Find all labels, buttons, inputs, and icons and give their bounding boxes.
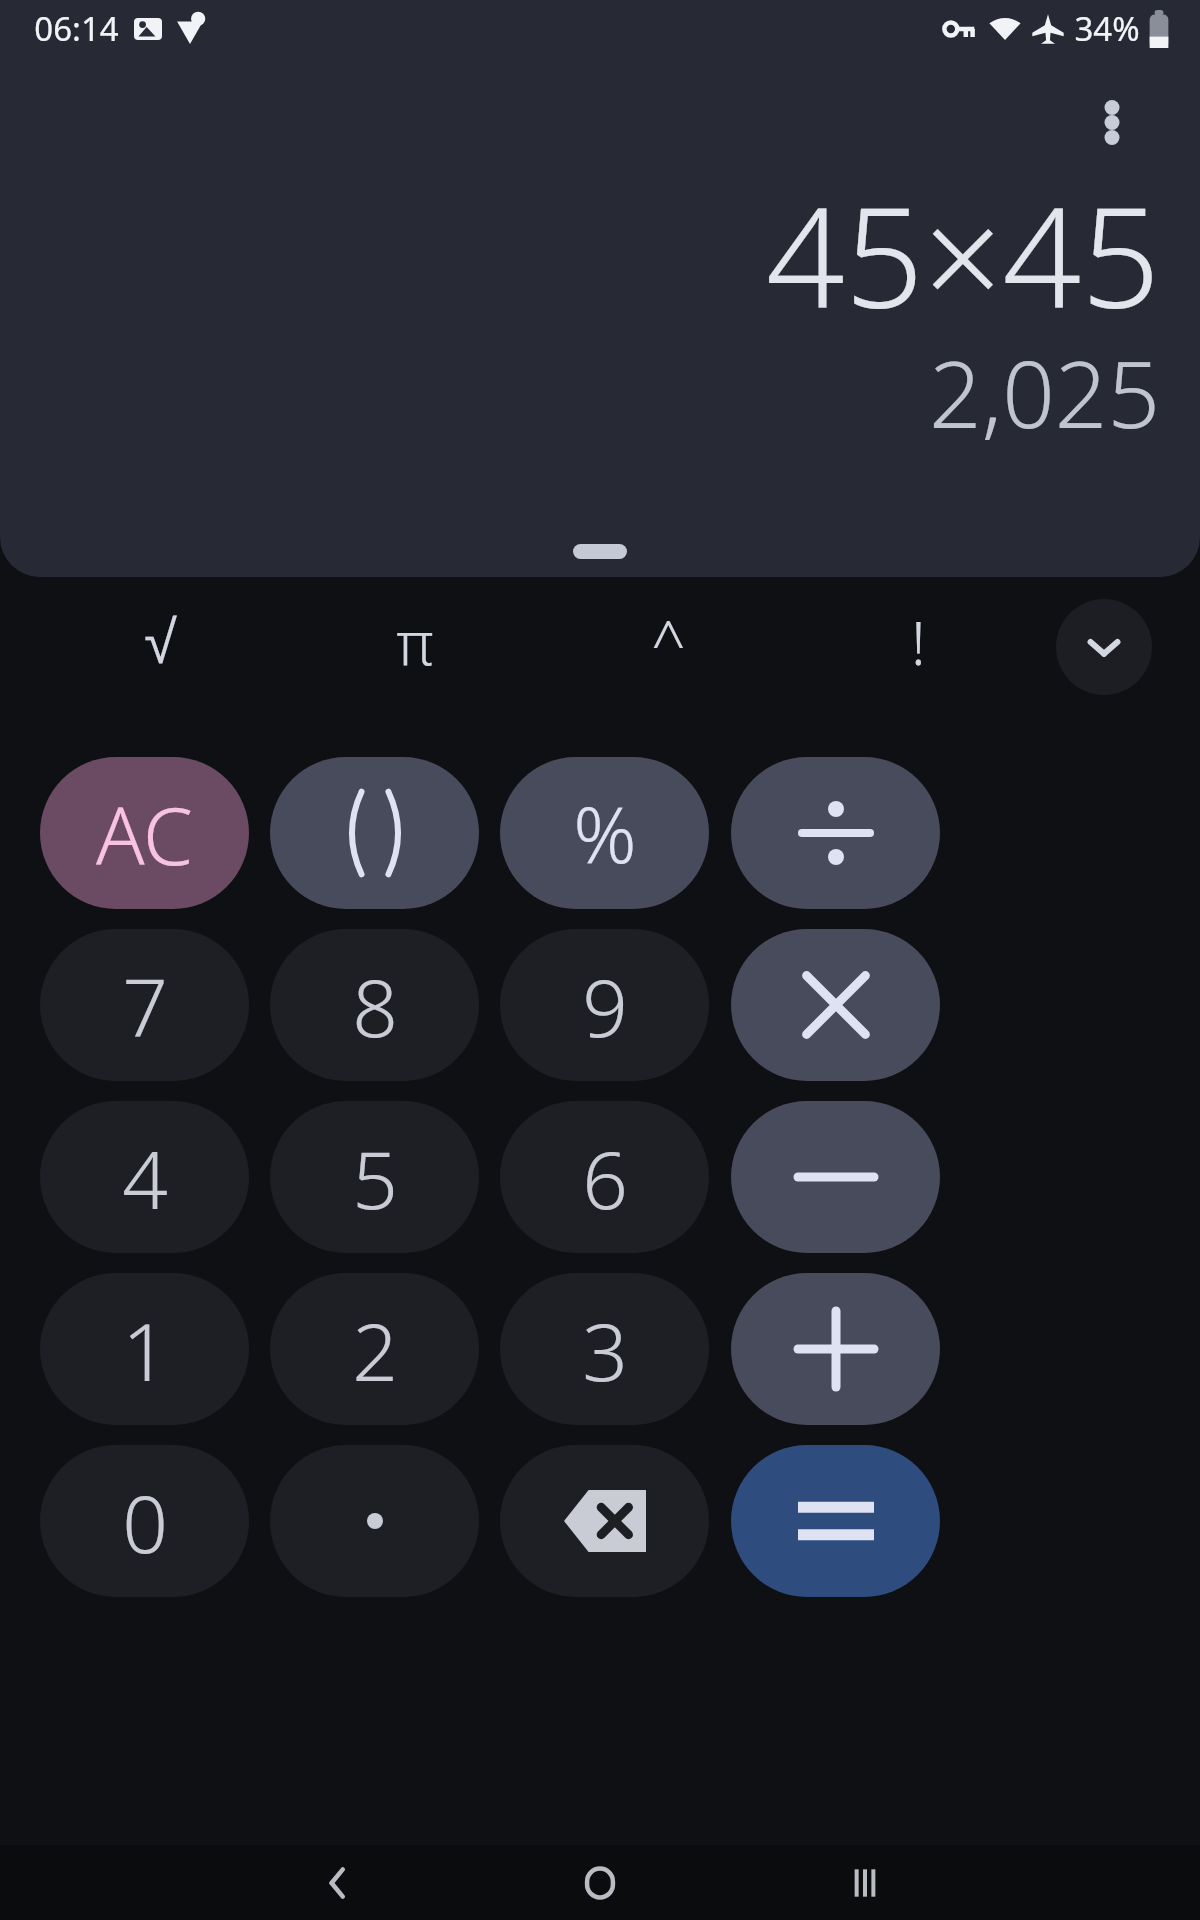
staticText: AC [96, 779, 193, 888]
staticText: √ [144, 609, 177, 676]
staticText: 3 [582, 1295, 628, 1404]
button[interactable]: ! [828, 577, 1008, 707]
staticText: 06:14 [34, 6, 119, 51]
button[interactable]: Equals [731, 1445, 940, 1597]
button[interactable]: 0 [40, 1445, 249, 1597]
staticText: 2,025 [929, 330, 1160, 455]
button[interactable]: ^ [578, 577, 758, 707]
button[interactable]: 6 [500, 1101, 709, 1253]
button[interactable]: 3 [500, 1273, 709, 1425]
staticText: 45×45 [766, 160, 1160, 348]
button[interactable]: Collapse functions [1056, 599, 1152, 695]
button[interactable]: More options [1060, 62, 1164, 166]
staticText: π [396, 601, 434, 683]
button[interactable]: π [325, 577, 505, 707]
staticText: 8 [352, 951, 398, 1060]
staticText: 7 [122, 951, 168, 1060]
staticText: 2 [352, 1295, 398, 1404]
staticText: 9 [582, 951, 628, 1060]
button[interactable]: 8 [270, 929, 479, 1081]
button[interactable]: Multiply [731, 929, 940, 1081]
button[interactable]: % [500, 757, 709, 909]
button[interactable]: Divide [731, 757, 940, 909]
button[interactable]: Decimal point [270, 1445, 479, 1597]
button[interactable]: AC [40, 757, 249, 909]
staticText: 4 [122, 1123, 168, 1232]
staticText: 1 [122, 1295, 168, 1404]
button[interactable]: Parentheses [270, 757, 479, 909]
staticText: ^ [651, 601, 686, 683]
button[interactable]: 4 [40, 1101, 249, 1253]
button[interactable]: 5 [270, 1101, 479, 1253]
button[interactable]: Expand history [548, 533, 652, 569]
button[interactable]: Subtract [731, 1101, 940, 1253]
button[interactable]: √ [70, 577, 250, 707]
staticText: 0 [122, 1467, 168, 1576]
button[interactable]: Home [540, 1845, 660, 1920]
button[interactable]: 1 [40, 1273, 249, 1425]
button[interactable]: Recent apps [805, 1845, 925, 1920]
staticText: ! [911, 601, 926, 683]
staticText: % [573, 780, 637, 886]
staticText: 5 [352, 1123, 398, 1232]
button[interactable]: Add [731, 1273, 940, 1425]
button[interactable]: Backspace [500, 1445, 709, 1597]
staticText: 6 [582, 1123, 628, 1232]
button[interactable]: 2 [270, 1273, 479, 1425]
staticText: 34% [1074, 6, 1140, 51]
button[interactable]: Back [278, 1845, 398, 1920]
button[interactable]: 7 [40, 929, 249, 1081]
button[interactable]: 9 [500, 929, 709, 1081]
